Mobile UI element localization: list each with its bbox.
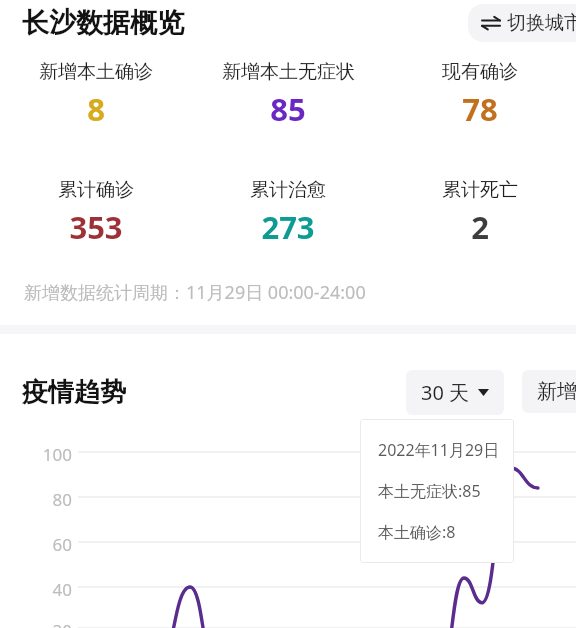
staticText: 累计死亡 bbox=[442, 178, 518, 202]
staticText: 长沙数据概览 bbox=[22, 6, 184, 40]
staticText: 切换城市 bbox=[507, 11, 576, 35]
button[interactable]: 新增 bbox=[522, 370, 576, 413]
button[interactable]: 2022年11月29日 bbox=[360, 419, 514, 563]
staticText: 100 bbox=[40, 443, 72, 466]
staticText: 累计确诊 bbox=[58, 178, 134, 202]
staticText: 60 bbox=[40, 533, 72, 556]
staticText: 2022年11月29日 bbox=[378, 439, 500, 461]
button[interactable]: Switch city bbox=[468, 4, 576, 42]
staticText: 本土确诊:8 bbox=[378, 521, 456, 543]
button[interactable]: 新增本土确诊 bbox=[0, 60, 192, 130]
staticText: 本土无症状:85 bbox=[378, 480, 481, 502]
staticText: 疫情趋势 bbox=[22, 376, 126, 409]
button[interactable]: 新增本土无症状 bbox=[192, 60, 384, 130]
staticText: 累计治愈 bbox=[250, 178, 326, 202]
staticText: 353 bbox=[69, 206, 123, 248]
staticText: 273 bbox=[261, 206, 315, 248]
button[interactable]: 累计死亡 bbox=[384, 178, 576, 248]
staticText: 新增数据统计周期：11月29日 00:00-24:00 bbox=[24, 280, 366, 305]
staticText: 80 bbox=[40, 488, 72, 511]
staticText: 2 bbox=[471, 206, 489, 248]
staticText: 新增本土无症状 bbox=[222, 60, 355, 84]
button[interactable]: 累计治愈 bbox=[192, 178, 384, 248]
button[interactable]: 累计确诊 bbox=[0, 178, 192, 248]
staticText: 85 bbox=[270, 88, 306, 130]
staticText: 20 bbox=[40, 619, 72, 628]
button[interactable]: 30 天 bbox=[406, 370, 504, 415]
button[interactable]: 现有确诊 bbox=[384, 60, 576, 130]
staticText: 40 bbox=[40, 578, 72, 601]
staticText: 新增本土确诊 bbox=[39, 60, 153, 84]
staticText: 现有确诊 bbox=[442, 60, 518, 84]
staticText: 78 bbox=[462, 88, 498, 130]
staticText: 8 bbox=[87, 88, 105, 130]
staticText: 新增 bbox=[537, 379, 576, 404]
other: Switch city bbox=[482, 16, 500, 30]
staticText: 30 天 bbox=[421, 379, 470, 406]
